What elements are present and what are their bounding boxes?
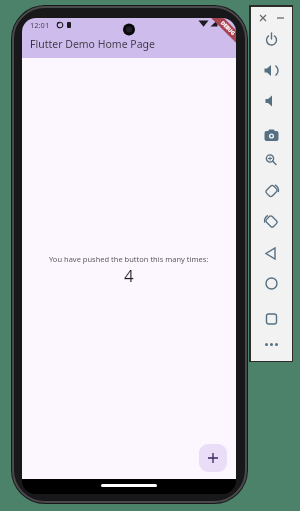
- button[interactable]: [199, 444, 227, 472]
- button[interactable]: [259, 123, 284, 147]
- button[interactable]: [259, 307, 284, 331]
- staticText: 4: [124, 264, 134, 287]
- button[interactable]: [256, 14, 270, 26]
- staticText: 12:01: [30, 20, 50, 30]
- button[interactable]: [259, 63, 284, 87]
- button[interactable]: [259, 33, 284, 57]
- button[interactable]: [259, 214, 284, 238]
- button[interactable]: [259, 337, 284, 361]
- button[interactable]: [259, 153, 284, 177]
- button[interactable]: [259, 94, 284, 118]
- staticText: DEBUG: [219, 20, 236, 37]
- button[interactable]: [259, 246, 284, 270]
- button[interactable]: [259, 184, 284, 208]
- button[interactable]: [274, 14, 288, 26]
- staticText: You have pushed the button this many tim…: [49, 254, 209, 264]
- staticText: Flutter Demo Home Page: [30, 37, 155, 51]
- button[interactable]: [259, 276, 284, 300]
